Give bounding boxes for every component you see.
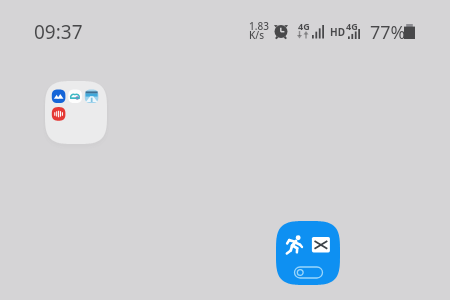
button[interactable]: Shortcuts widget xyxy=(276,221,340,285)
staticText: HD xyxy=(330,25,345,39)
button[interactable]: App folder xyxy=(45,81,107,144)
staticText: K/s xyxy=(249,28,265,42)
staticText: 4G xyxy=(346,20,358,32)
staticText: 09:37 xyxy=(34,19,83,45)
staticText: 4G xyxy=(298,20,310,32)
staticText: 1.83 xyxy=(249,19,269,33)
staticText: 77% xyxy=(370,20,406,45)
